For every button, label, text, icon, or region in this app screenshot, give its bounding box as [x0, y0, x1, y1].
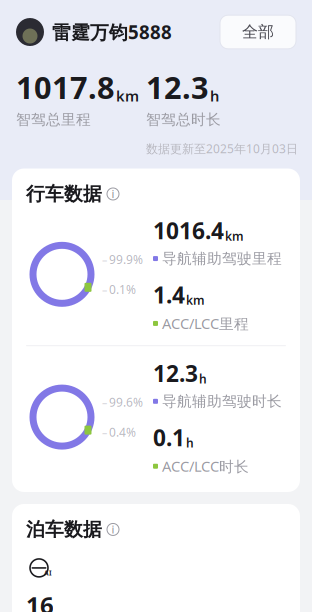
staticText: 泊车数据 — [26, 518, 102, 541]
staticText: ACC/LCC时长 — [162, 456, 249, 476]
staticText: 0.1% — [109, 281, 136, 297]
staticText: km — [116, 86, 139, 106]
staticText: 1.4 — [153, 280, 185, 310]
staticText: 智驾总里程 — [16, 111, 91, 129]
staticText: 99.6% — [109, 394, 143, 410]
staticText: 99.9% — [109, 251, 143, 267]
staticText: 数据更新至2025年10月03日 — [146, 141, 298, 156]
staticText: i — [111, 187, 114, 201]
staticText: 雷霆万钧5888 — [52, 20, 172, 44]
staticText: km — [186, 292, 205, 308]
staticText: ACC/LCC里程 — [162, 314, 249, 333]
staticText: i — [111, 522, 114, 537]
button[interactable]: Info — [107, 523, 119, 535]
staticText: h — [210, 86, 219, 106]
staticText: 12.3 — [153, 358, 198, 388]
staticText: h — [199, 371, 207, 387]
staticText: 全部 — [242, 22, 274, 42]
staticText: 导航辅助驾驶里程 — [162, 249, 282, 267]
staticText: – — [102, 282, 107, 296]
staticText: – — [102, 395, 107, 409]
staticText: 1016.4 — [153, 215, 224, 245]
staticText: – — [102, 425, 107, 439]
staticText: 导航辅助驾驶时长 — [162, 392, 282, 410]
button[interactable]: Info — [107, 188, 119, 200]
button[interactable]: 全部 — [220, 15, 296, 49]
staticText: AI — [44, 568, 52, 577]
staticText: 行车数据 — [26, 182, 102, 205]
staticText: 1017.8 — [16, 67, 115, 107]
staticText: 0.1 — [153, 422, 185, 452]
staticText: h — [186, 435, 194, 451]
staticText: 12.3 — [146, 67, 209, 107]
staticText: 0.4% — [109, 424, 136, 440]
staticText: 智驾总时长 — [146, 111, 221, 129]
staticText: 16 — [26, 589, 54, 612]
staticText: km — [225, 228, 244, 244]
staticText: – — [102, 252, 107, 266]
